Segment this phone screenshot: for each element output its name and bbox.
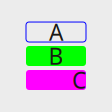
staticText: B [48,41,63,71]
staticText: C [72,65,86,95]
staticText: A [49,17,63,47]
